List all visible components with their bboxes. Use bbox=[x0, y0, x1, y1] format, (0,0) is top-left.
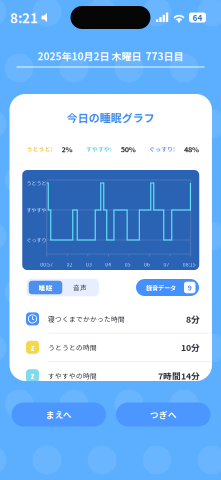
staticText: うとうと bbox=[26, 179, 46, 187]
staticText: すやすや bbox=[26, 206, 46, 214]
staticText: 10分 bbox=[181, 341, 200, 353]
staticText: 00:57 bbox=[40, 261, 53, 268]
staticText: すやすやの時間 bbox=[48, 371, 97, 381]
staticText: 8:21 bbox=[10, 8, 38, 27]
button[interactable]: 録音データ bbox=[136, 279, 199, 296]
button[interactable]: まえへ bbox=[11, 402, 106, 426]
staticText: 50% bbox=[121, 144, 136, 154]
staticText: 睡眠 bbox=[38, 283, 52, 292]
staticText: つぎへ bbox=[150, 408, 177, 421]
staticText: すやすや: bbox=[86, 145, 112, 153]
staticText: 音声 bbox=[73, 283, 87, 292]
staticText: 03 bbox=[86, 261, 92, 268]
staticText: ぐっすり: bbox=[149, 145, 175, 153]
button[interactable]: つぎへ bbox=[116, 402, 210, 426]
staticText: ぐっすり bbox=[26, 236, 46, 244]
staticText: z bbox=[30, 341, 34, 353]
staticText: うとうとの時間 bbox=[48, 342, 97, 352]
button[interactable]: 寝つくまでかかった時間 bbox=[9, 305, 212, 333]
staticText: 48% bbox=[184, 144, 199, 154]
staticText: 2% bbox=[61, 144, 72, 154]
staticText: 64 bbox=[192, 12, 202, 23]
staticText: 05 bbox=[125, 261, 131, 268]
staticText: 7時間14分 bbox=[158, 369, 200, 382]
staticText: 録音データ bbox=[146, 283, 176, 292]
staticText: 07 bbox=[163, 261, 169, 268]
staticText: うとうと: bbox=[26, 145, 52, 153]
staticText: 2025年10月2日 木曜日 773日目 bbox=[37, 49, 183, 63]
button[interactable]: 音声 bbox=[63, 281, 97, 294]
button[interactable]: 睡眠 bbox=[29, 281, 62, 294]
button[interactable]: z bbox=[9, 333, 212, 361]
staticText: 今日の睡眠グラフ bbox=[67, 110, 155, 125]
staticText: 02 bbox=[67, 261, 73, 268]
staticText: z bbox=[30, 370, 34, 381]
staticText: 04 bbox=[105, 261, 111, 268]
button[interactable]: z bbox=[9, 362, 212, 390]
staticText: 06 bbox=[144, 261, 150, 268]
staticText: 08:15 bbox=[183, 261, 196, 268]
staticText: まえへ bbox=[46, 408, 72, 421]
staticText: 寝つくまでかかった時間 bbox=[48, 314, 125, 324]
staticText: 8分 bbox=[186, 313, 200, 325]
staticText: 9 bbox=[188, 283, 192, 292]
